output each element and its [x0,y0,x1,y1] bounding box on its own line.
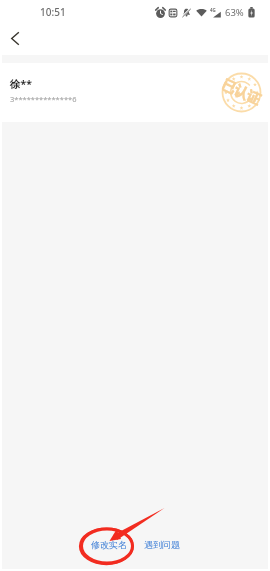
button[interactable]: 遇到问题 [140,536,184,553]
staticText: 徐** [10,77,32,91]
staticText: 63% [225,6,244,19]
staticText: 10:51 [40,5,66,19]
staticText: 遇到问题 [144,539,180,550]
button[interactable]: Back [3,26,27,50]
staticText: 修改实名 [91,539,127,550]
button[interactable]: 修改实名 [87,536,131,553]
staticText: 3**************6 [10,94,77,104]
staticText: 4G [210,7,216,13]
staticText: 已认证 [219,76,264,109]
